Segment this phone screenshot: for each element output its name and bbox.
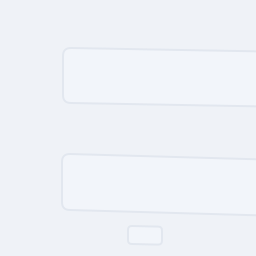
button[interactable]: Continue [128,226,162,244]
